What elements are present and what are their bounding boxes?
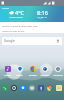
button[interactable]: Phone [1,84,9,92]
button[interactable]: Messages [10,84,18,92]
button[interactable]: Music [2,66,13,76]
other: Voice search [56,39,60,43]
staticText: Google [4,39,15,43]
button[interactable]: Settings [52,66,63,76]
staticText: Camera [40,73,49,76]
button[interactable]: Facebook [37,84,45,92]
staticText: 8:16 [37,9,48,16]
staticText: 4°C [15,9,24,16]
staticText: Photos [29,73,37,76]
staticText: Settings [53,73,63,76]
staticText: Seattle [2,7,10,10]
staticText: About 22 min by car [2,29,25,32]
button[interactable]: Maps [14,66,25,76]
button[interactable]: Camera [39,66,50,76]
staticText: Music [4,73,11,76]
button[interactable]: Photos [27,66,38,76]
button[interactable]: Hangouts [19,84,27,92]
button[interactable]: Gallery [28,84,36,92]
staticText: Fri, Jan 12 [37,16,48,19]
staticText: Maps [16,73,23,76]
button[interactable]: Chrome [46,84,54,92]
button[interactable]: Notes [55,84,63,92]
button[interactable]: Seattle [0,6,64,33]
staticText: Mostly cloudy [9,16,24,19]
button[interactable]: Google [2,37,62,45]
staticText: Traffic to work is light right now [2,24,38,27]
